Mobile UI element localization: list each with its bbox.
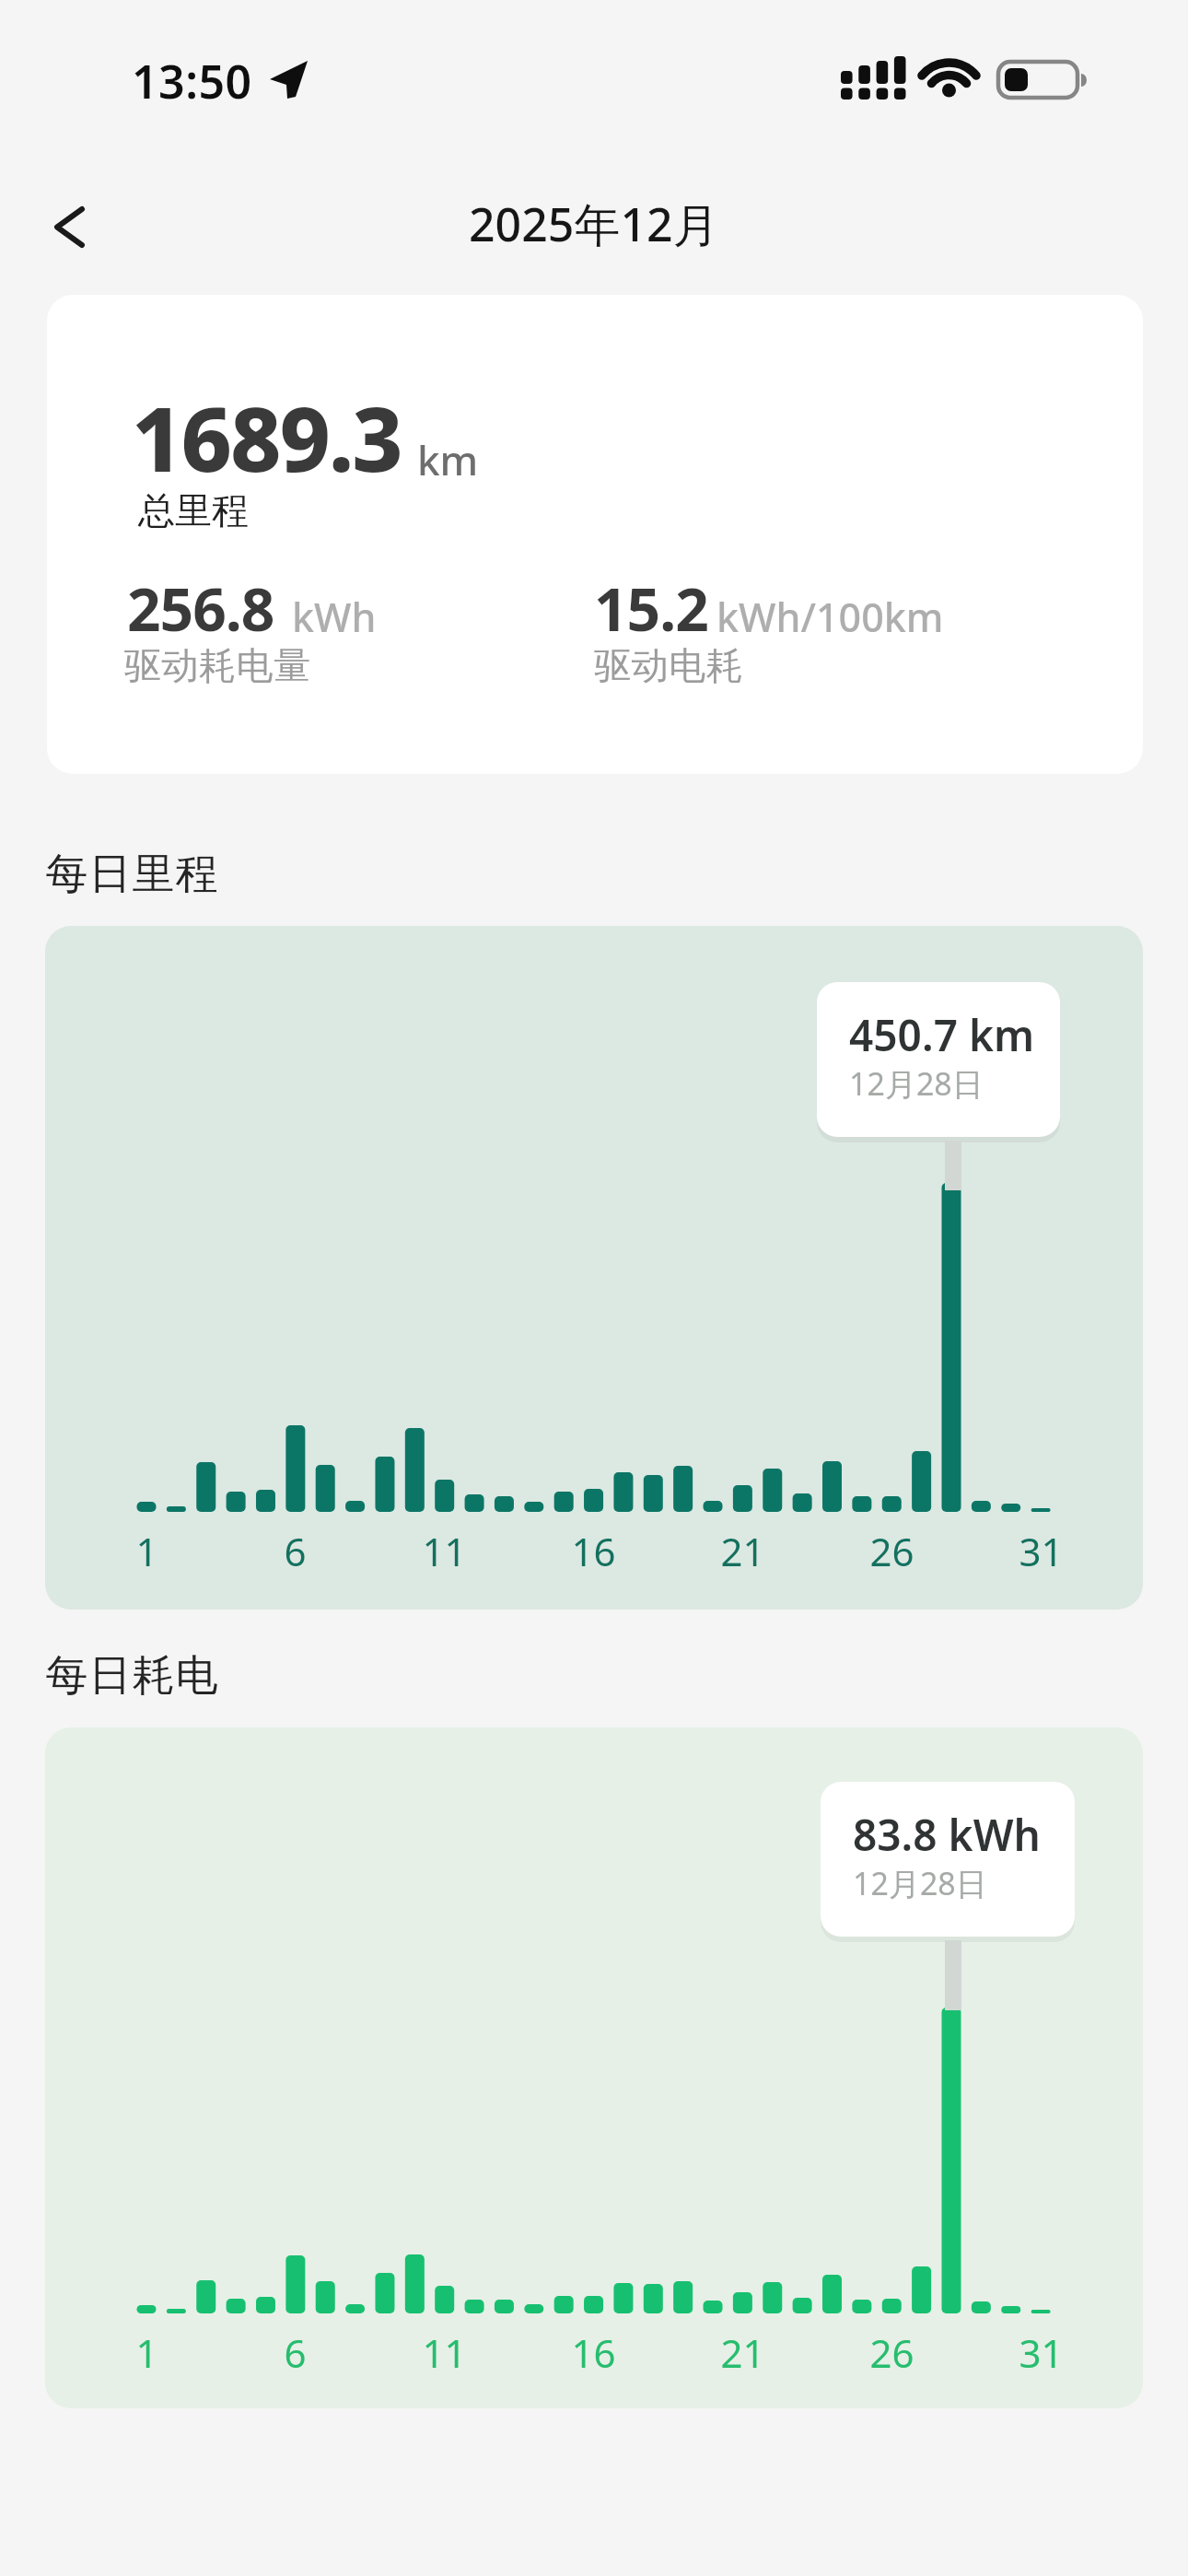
staticText: kWh/100km <box>716 590 944 644</box>
staticText: 总里程 <box>138 487 249 533</box>
staticText: 驱动电耗 <box>594 642 743 688</box>
staticText: 21 <box>720 1525 765 1577</box>
staticText: 13:50 <box>132 50 252 112</box>
staticText: 26 <box>869 2326 914 2379</box>
staticText: 6 <box>284 2326 307 2379</box>
staticText: 驱动耗电量 <box>124 642 311 688</box>
staticText: 256.8 <box>127 568 274 649</box>
staticText: 1 <box>135 1525 158 1577</box>
staticText: 31 <box>1019 2326 1064 2379</box>
staticText: kWh <box>292 590 377 644</box>
staticText: 12月28日 <box>849 1062 984 1105</box>
staticText: 450.7 km <box>849 1006 1035 1064</box>
staticText: 83.8 kWh <box>853 1806 1041 1864</box>
staticText: 12月28日 <box>853 1862 987 1904</box>
staticText: 每日里程 <box>45 848 218 901</box>
staticText: 26 <box>869 1525 914 1577</box>
staticText: 1689.3 <box>132 377 402 498</box>
staticText: 31 <box>1019 1525 1064 1577</box>
staticText: 16 <box>571 1525 616 1577</box>
staticText: 每日耗电 <box>45 1649 218 1703</box>
staticText: 6 <box>284 1525 307 1577</box>
staticText: 21 <box>720 2326 765 2379</box>
staticText: 1 <box>135 2326 158 2379</box>
staticText: 11 <box>422 2326 467 2379</box>
button[interactable] <box>28 184 111 267</box>
staticText: km <box>417 432 479 487</box>
staticText: 15.2 <box>594 568 708 649</box>
staticText: 16 <box>571 2326 616 2379</box>
staticText: 11 <box>422 1525 467 1577</box>
staticText: 2025年12月 <box>469 193 719 255</box>
